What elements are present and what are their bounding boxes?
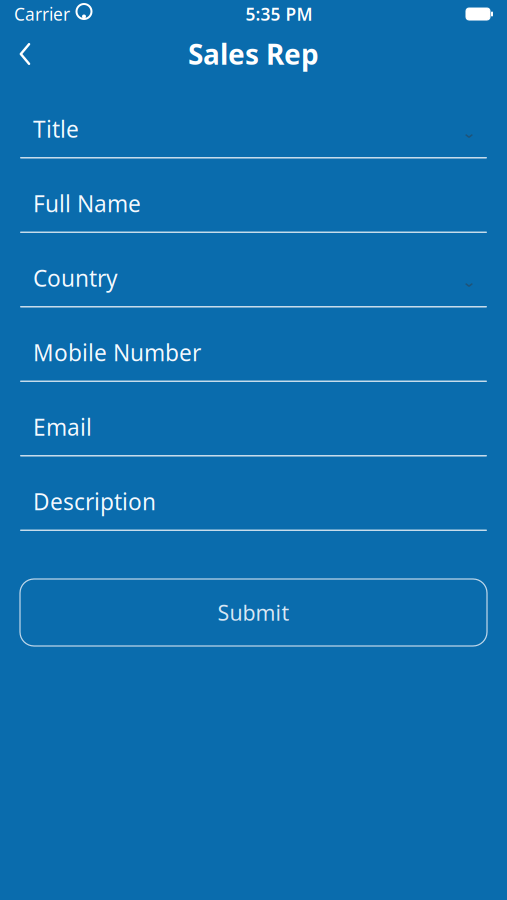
staticText: Email: [33, 412, 92, 442]
button[interactable]: Full Name: [0, 175, 507, 250]
staticText: Full Name: [33, 188, 141, 218]
button[interactable]: Submit: [20, 579, 487, 646]
button[interactable]: Country: [0, 250, 507, 324]
button[interactable]: Title: [0, 101, 507, 175]
staticText: Mobile Number: [33, 337, 201, 367]
staticText: Description: [33, 486, 156, 516]
staticText: Title: [33, 114, 79, 144]
button[interactable]: Email: [0, 399, 507, 473]
staticText: Submit: [217, 598, 289, 627]
button[interactable]: Back: [0, 30, 50, 78]
staticText: Carrier: [14, 2, 70, 25]
button[interactable]: Description: [0, 473, 507, 548]
button[interactable]: Mobile Number: [0, 324, 507, 399]
staticText: 5:35 PM: [245, 2, 312, 25]
staticText: Country: [33, 263, 118, 293]
staticText: Sales Rep: [188, 35, 319, 73]
